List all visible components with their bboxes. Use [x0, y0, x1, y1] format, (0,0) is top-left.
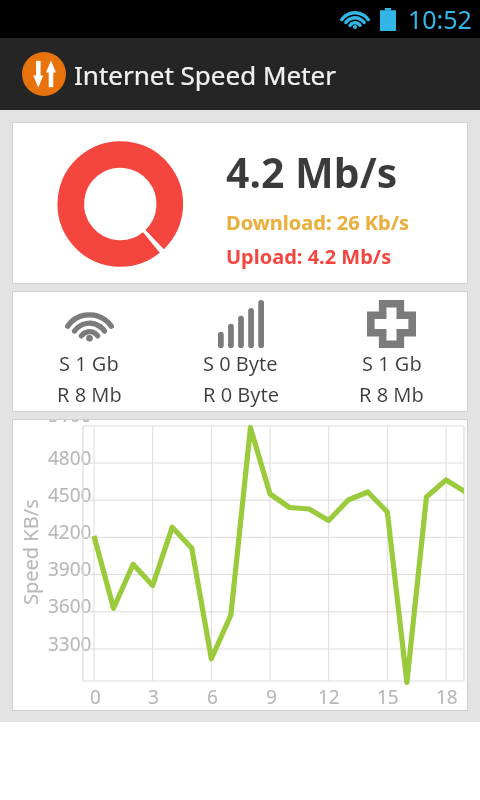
staticText: 18 — [436, 684, 458, 710]
other: WiFi — [65, 306, 114, 343]
staticText: 4200 — [48, 519, 92, 545]
staticText: R 8 Mb — [359, 381, 424, 408]
other: Mobile signal — [218, 300, 264, 348]
staticText: 4800 — [48, 445, 92, 471]
staticText: R 8 Mb — [57, 381, 122, 408]
staticText: Internet Speed Meter — [74, 57, 336, 92]
staticText: S 1 Gb — [362, 350, 422, 377]
button[interactable]: Add — [316, 292, 467, 411]
staticText: 4.2 Mb/s — [226, 144, 398, 200]
staticText: 12 — [318, 684, 340, 710]
staticText: Upload: 4.2 Mb/s — [226, 243, 392, 270]
staticText: 15 — [377, 684, 399, 710]
staticText: 0 — [90, 684, 101, 710]
staticText: Download: 26 Kb/s — [226, 209, 410, 236]
other: Add — [367, 300, 416, 348]
staticText: 10:52 — [408, 2, 472, 36]
staticText: R 0 Byte — [203, 381, 279, 408]
staticText: 4500 — [48, 482, 92, 508]
staticText: 3600 — [48, 593, 92, 619]
button[interactable]: 4.2 Mb/s — [13, 123, 467, 283]
staticText: Speed KB/s — [17, 499, 44, 605]
staticText: 3 — [148, 684, 159, 710]
staticText: 3900 — [48, 556, 92, 582]
button[interactable]: Internet Speed Meter icon — [22, 52, 66, 96]
button[interactable]: Mobile signal — [165, 292, 316, 411]
staticText: 6 — [207, 684, 218, 710]
button[interactable]: WiFi — [13, 292, 165, 411]
staticText: 9 — [266, 684, 277, 710]
staticText: S 1 Gb — [59, 350, 119, 377]
staticText: S 0 Byte — [203, 350, 278, 377]
staticText: 5100 — [48, 420, 92, 428]
staticText: 3300 — [48, 631, 92, 657]
